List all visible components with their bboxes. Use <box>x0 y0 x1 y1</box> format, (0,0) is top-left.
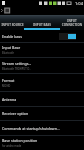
button[interactable]: INPUT CONNECTION <box>60 15 84 30</box>
button[interactable]: Input Base <box>0 43 84 57</box>
staticText: Antenna <box>2 97 17 102</box>
button[interactable]: Base station position <box>0 136 84 150</box>
button[interactable]: Enable bass <box>0 30 84 42</box>
button[interactable]: Stream settings... <box>0 58 84 73</box>
staticText: MONO <box>2 84 11 88</box>
button[interactable]: INPUT BASS <box>24 15 60 30</box>
button[interactable]: Format <box>0 74 84 91</box>
staticText: for wideo mode <box>2 144 22 148</box>
staticText: Stream settings... <box>2 61 32 66</box>
staticText: Format <box>2 78 15 83</box>
staticText: 1:04 <box>75 1 83 6</box>
staticText: Bluetooth <box>2 51 15 55</box>
button[interactable]: Commands at startup/shutdown... <box>0 121 84 135</box>
staticText: Bluetooth TROHPUT O.. <box>2 67 31 71</box>
staticText: Commands at startup/shutdown... <box>2 126 60 131</box>
staticText: Receiver option <box>2 111 29 116</box>
staticText: INPUT SOURCE <box>1 23 24 27</box>
button[interactable]: Navigate up <box>0 6 12 15</box>
staticText: Input Base <box>2 45 21 50</box>
button[interactable]: Antenna <box>0 92 84 106</box>
button[interactable]: INPUT SOURCE <box>0 15 24 30</box>
staticText: Base station position <box>2 138 38 143</box>
staticText: INPUT BASS <box>33 23 51 27</box>
staticText: INPUT CONNECTION <box>60 19 84 27</box>
staticText: Enable bass <box>2 34 23 39</box>
button[interactable]: Receiver option <box>0 107 84 120</box>
